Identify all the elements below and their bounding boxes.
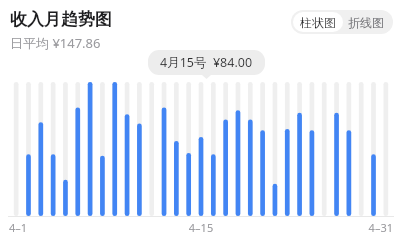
staticText: 4–31 [265, 220, 393, 235]
staticText: 收入月趋势图 [10, 9, 112, 30]
staticText: 4月15号 ¥84.00 [160, 54, 253, 71]
staticText: 柱状图 [300, 15, 336, 30]
button[interactable]: 柱状图 [293, 12, 343, 32]
staticText: 日平均 ¥147.86 [10, 34, 101, 52]
button[interactable]: 折线图 [345, 10, 393, 34]
staticText: 折线图 [348, 15, 384, 30]
staticText: 4–1 [9, 220, 137, 235]
staticText: 4–15 [137, 220, 265, 235]
button[interactable]: 4月15号 ¥84.00 [148, 50, 265, 75]
other: Selected day detail [148, 50, 265, 79]
